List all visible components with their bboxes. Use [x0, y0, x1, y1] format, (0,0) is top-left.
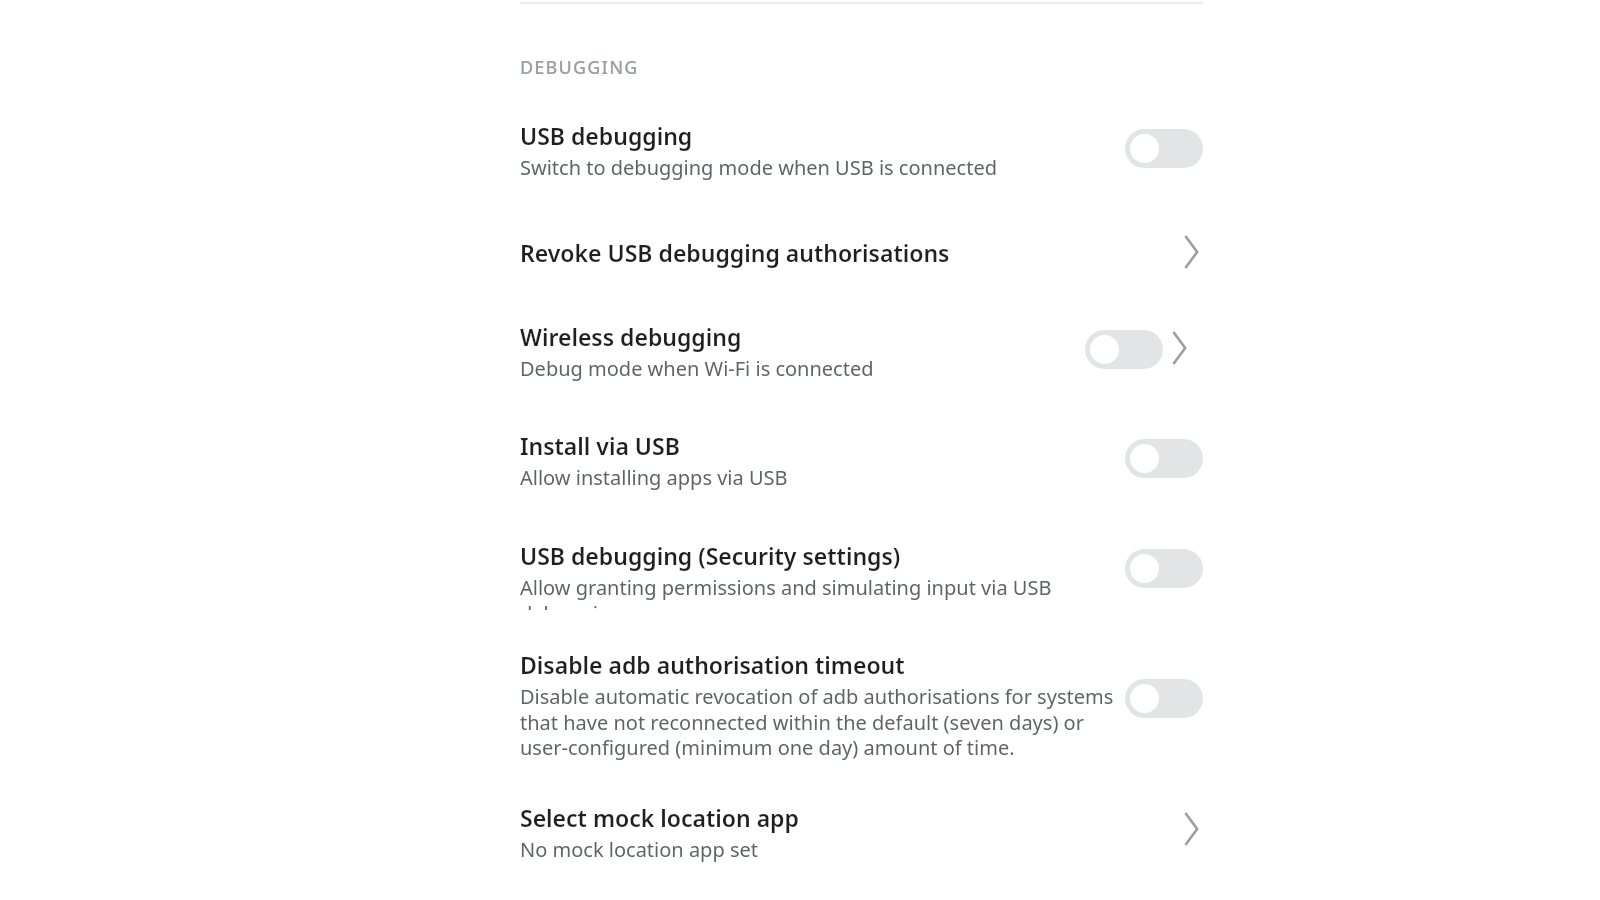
- staticText: USB debugging: [520, 120, 693, 151]
- staticText: Allow installing apps via USB: [520, 464, 788, 491]
- button[interactable]: Wireless debugging toggle: [1085, 330, 1163, 369]
- staticText: Allow granting permissions and simulatin…: [520, 574, 1119, 610]
- button[interactable]: Install via USB toggle: [1125, 439, 1203, 478]
- staticText: Select mock location app: [520, 802, 799, 833]
- staticText: Switch to debugging mode when USB is con…: [520, 154, 997, 181]
- button[interactable]: Disable adb authorisation timeout toggle: [1125, 679, 1203, 718]
- button[interactable]: Disable adb authorisation timeout: [520, 639, 1203, 769]
- button[interactable]: USB debugging: [520, 110, 1203, 190]
- button[interactable]: USB debugging (Security settings): [520, 530, 1203, 610]
- staticText: No mock location app set: [520, 836, 758, 863]
- staticText: Disable adb authorisation timeout: [520, 649, 905, 680]
- staticText: Wireless debugging: [520, 321, 742, 352]
- button[interactable]: USB debugging toggle: [1125, 129, 1203, 168]
- staticText: USB debugging (Security settings): [520, 540, 901, 571]
- button[interactable]: Revoke USB debugging authorisations: [520, 225, 1203, 279]
- button[interactable]: USB debugging security settings toggle: [1125, 549, 1203, 588]
- staticText: Install via USB: [520, 430, 680, 461]
- button[interactable]: Revoke USB debugging authorisations: [1171, 229, 1211, 275]
- button[interactable]: Install via USB: [520, 420, 1203, 500]
- staticText: Revoke USB debugging authorisations: [520, 237, 950, 268]
- button[interactable]: Select mock location app: [520, 792, 1203, 872]
- button[interactable]: Wireless debugging: [520, 311, 1203, 391]
- staticText: Debug mode when Wi-Fi is connected: [520, 355, 874, 382]
- staticText: Disable automatic revocation of adb auth…: [520, 683, 1119, 760]
- button[interactable]: Select mock location app: [1171, 806, 1211, 852]
- staticText: DEBUGGING: [520, 55, 639, 80]
- button[interactable]: Wireless debugging settings: [1159, 325, 1199, 371]
